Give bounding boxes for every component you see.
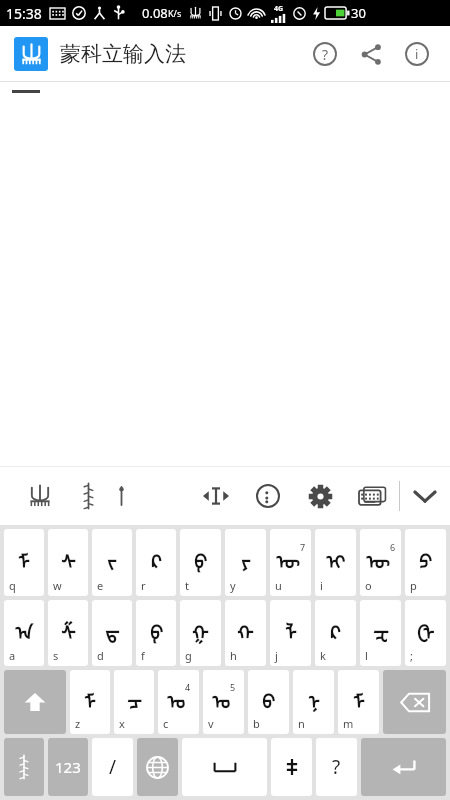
staticText: n: [298, 716, 305, 731]
staticText: p: [410, 578, 417, 593]
staticText: ᠽ: [373, 612, 389, 645]
button[interactable]: Hide keyboard: [400, 471, 450, 521]
button[interactable]: ᠶ: [225, 529, 266, 596]
button[interactable]: Input method logo: [20, 476, 60, 516]
button[interactable]: ᠴ: [114, 670, 154, 734]
staticText: m: [343, 716, 354, 731]
staticText: g: [185, 648, 192, 663]
staticText: ᠠ: [15, 612, 33, 645]
staticText: i: [415, 45, 419, 63]
staticText: ᠪ: [262, 681, 275, 714]
staticText: w: [53, 578, 62, 593]
staticText: ᠮ: [353, 681, 365, 714]
button[interactable]: Mongolian letter: [106, 481, 136, 511]
button[interactable]: Settings: [297, 473, 343, 519]
staticText: 4: [185, 681, 191, 693]
button[interactable]: Enter: [361, 738, 446, 796]
button[interactable]: ᠯ: [270, 600, 311, 666]
button[interactable]: Symbol: [271, 738, 312, 796]
staticText: l: [365, 648, 368, 663]
staticText: K/s: [168, 7, 182, 19]
button[interactable]: Info: [394, 31, 440, 77]
staticText: ᠮ: [18, 541, 30, 574]
button[interactable]: ᠥ: [360, 529, 401, 596]
button[interactable]: Switch keyboard: [349, 473, 395, 519]
staticText: z: [75, 716, 81, 731]
button[interactable]: ᠦ: [270, 529, 311, 596]
button[interactable]: ᠰ: [48, 529, 88, 596]
button[interactable]: ᠨ: [293, 670, 334, 734]
staticText: e: [97, 578, 104, 593]
button[interactable]: ᠠ: [4, 600, 44, 666]
button[interactable]: /: [92, 738, 133, 796]
button[interactable]: Change language: [137, 738, 178, 796]
button[interactable]: ᠹ: [136, 600, 176, 666]
button[interactable]: Help: [302, 31, 348, 77]
staticText: 15:38: [6, 4, 42, 23]
staticText: t: [185, 578, 189, 593]
button[interactable]: Move cursor: [193, 473, 239, 519]
staticText: ᠹ: [194, 541, 207, 574]
staticText: ᠳ: [105, 612, 120, 645]
button[interactable]: ᠿ: [405, 600, 446, 666]
button[interactable]: ᠮ: [4, 529, 44, 596]
staticText: d: [97, 648, 104, 663]
staticText: v: [208, 716, 214, 731]
button[interactable]: App logo: [14, 37, 48, 71]
staticText: 5: [230, 681, 236, 693]
staticText: ᠿ: [417, 612, 435, 645]
staticText: ᠨ: [308, 681, 320, 714]
staticText: o: [365, 578, 372, 593]
staticText: ᠮ: [84, 681, 96, 714]
button[interactable]: ᠱ: [48, 600, 88, 666]
staticText: ᠵ: [107, 541, 117, 574]
button[interactable]: Backspace: [383, 670, 446, 734]
staticText: i: [320, 578, 323, 593]
staticText: ᠣ: [167, 681, 185, 714]
button[interactable]: Space: [182, 738, 267, 796]
button[interactable]: ᠪ: [248, 670, 289, 734]
button[interactable]: ᠵ: [92, 529, 132, 596]
button[interactable]: ᠫ: [405, 529, 446, 596]
staticText: 7: [300, 541, 306, 553]
button[interactable]: ᠮ: [70, 670, 110, 734]
button[interactable]: ᠽ: [360, 600, 401, 666]
staticText: a: [9, 648, 16, 663]
staticText: ᠺ: [330, 612, 341, 645]
staticText: y: [230, 578, 236, 593]
staticText: ᠴ: [127, 681, 142, 714]
staticText: s: [53, 648, 59, 663]
staticText: ᠤ: [212, 681, 230, 714]
button[interactable]: ?: [316, 738, 357, 796]
staticText: 6: [390, 541, 396, 553]
button[interactable]: ᠤ: [203, 670, 244, 734]
button[interactable]: ᠺ: [136, 529, 176, 596]
staticText: ᠬ: [237, 612, 254, 645]
button[interactable]: Shift: [4, 670, 66, 734]
staticText: ;: [410, 648, 413, 663]
staticText: ?: [322, 45, 329, 64]
button[interactable]: ᠢ: [315, 529, 356, 596]
button[interactable]: Emoji: [245, 473, 291, 519]
button[interactable]: Mongolian script: [70, 478, 106, 514]
staticText: r: [141, 578, 146, 593]
staticText: ?: [332, 754, 341, 780]
staticText: x: [119, 716, 125, 731]
button[interactable]: ᠮ: [338, 670, 379, 734]
button[interactable]: Mongolian mode: [4, 738, 44, 796]
staticText: /: [109, 754, 117, 780]
staticText: ᠶ: [241, 541, 251, 574]
button[interactable]: ᠺ: [315, 600, 356, 666]
button[interactable]: ᠳ: [92, 600, 132, 666]
button[interactable]: 123: [48, 738, 88, 796]
button[interactable]: ᠣ: [158, 670, 199, 734]
staticText: q: [9, 578, 16, 593]
button[interactable]: ᠭ: [180, 600, 221, 666]
staticText: c: [163, 716, 169, 731]
button[interactable]: Share: [348, 31, 394, 77]
button[interactable]: ᠹ: [180, 529, 221, 596]
button[interactable]: ᠬ: [225, 600, 266, 666]
staticText: ᠭ: [192, 612, 209, 645]
staticText: ᠦ: [276, 541, 300, 574]
staticText: ᠰ: [61, 541, 76, 574]
